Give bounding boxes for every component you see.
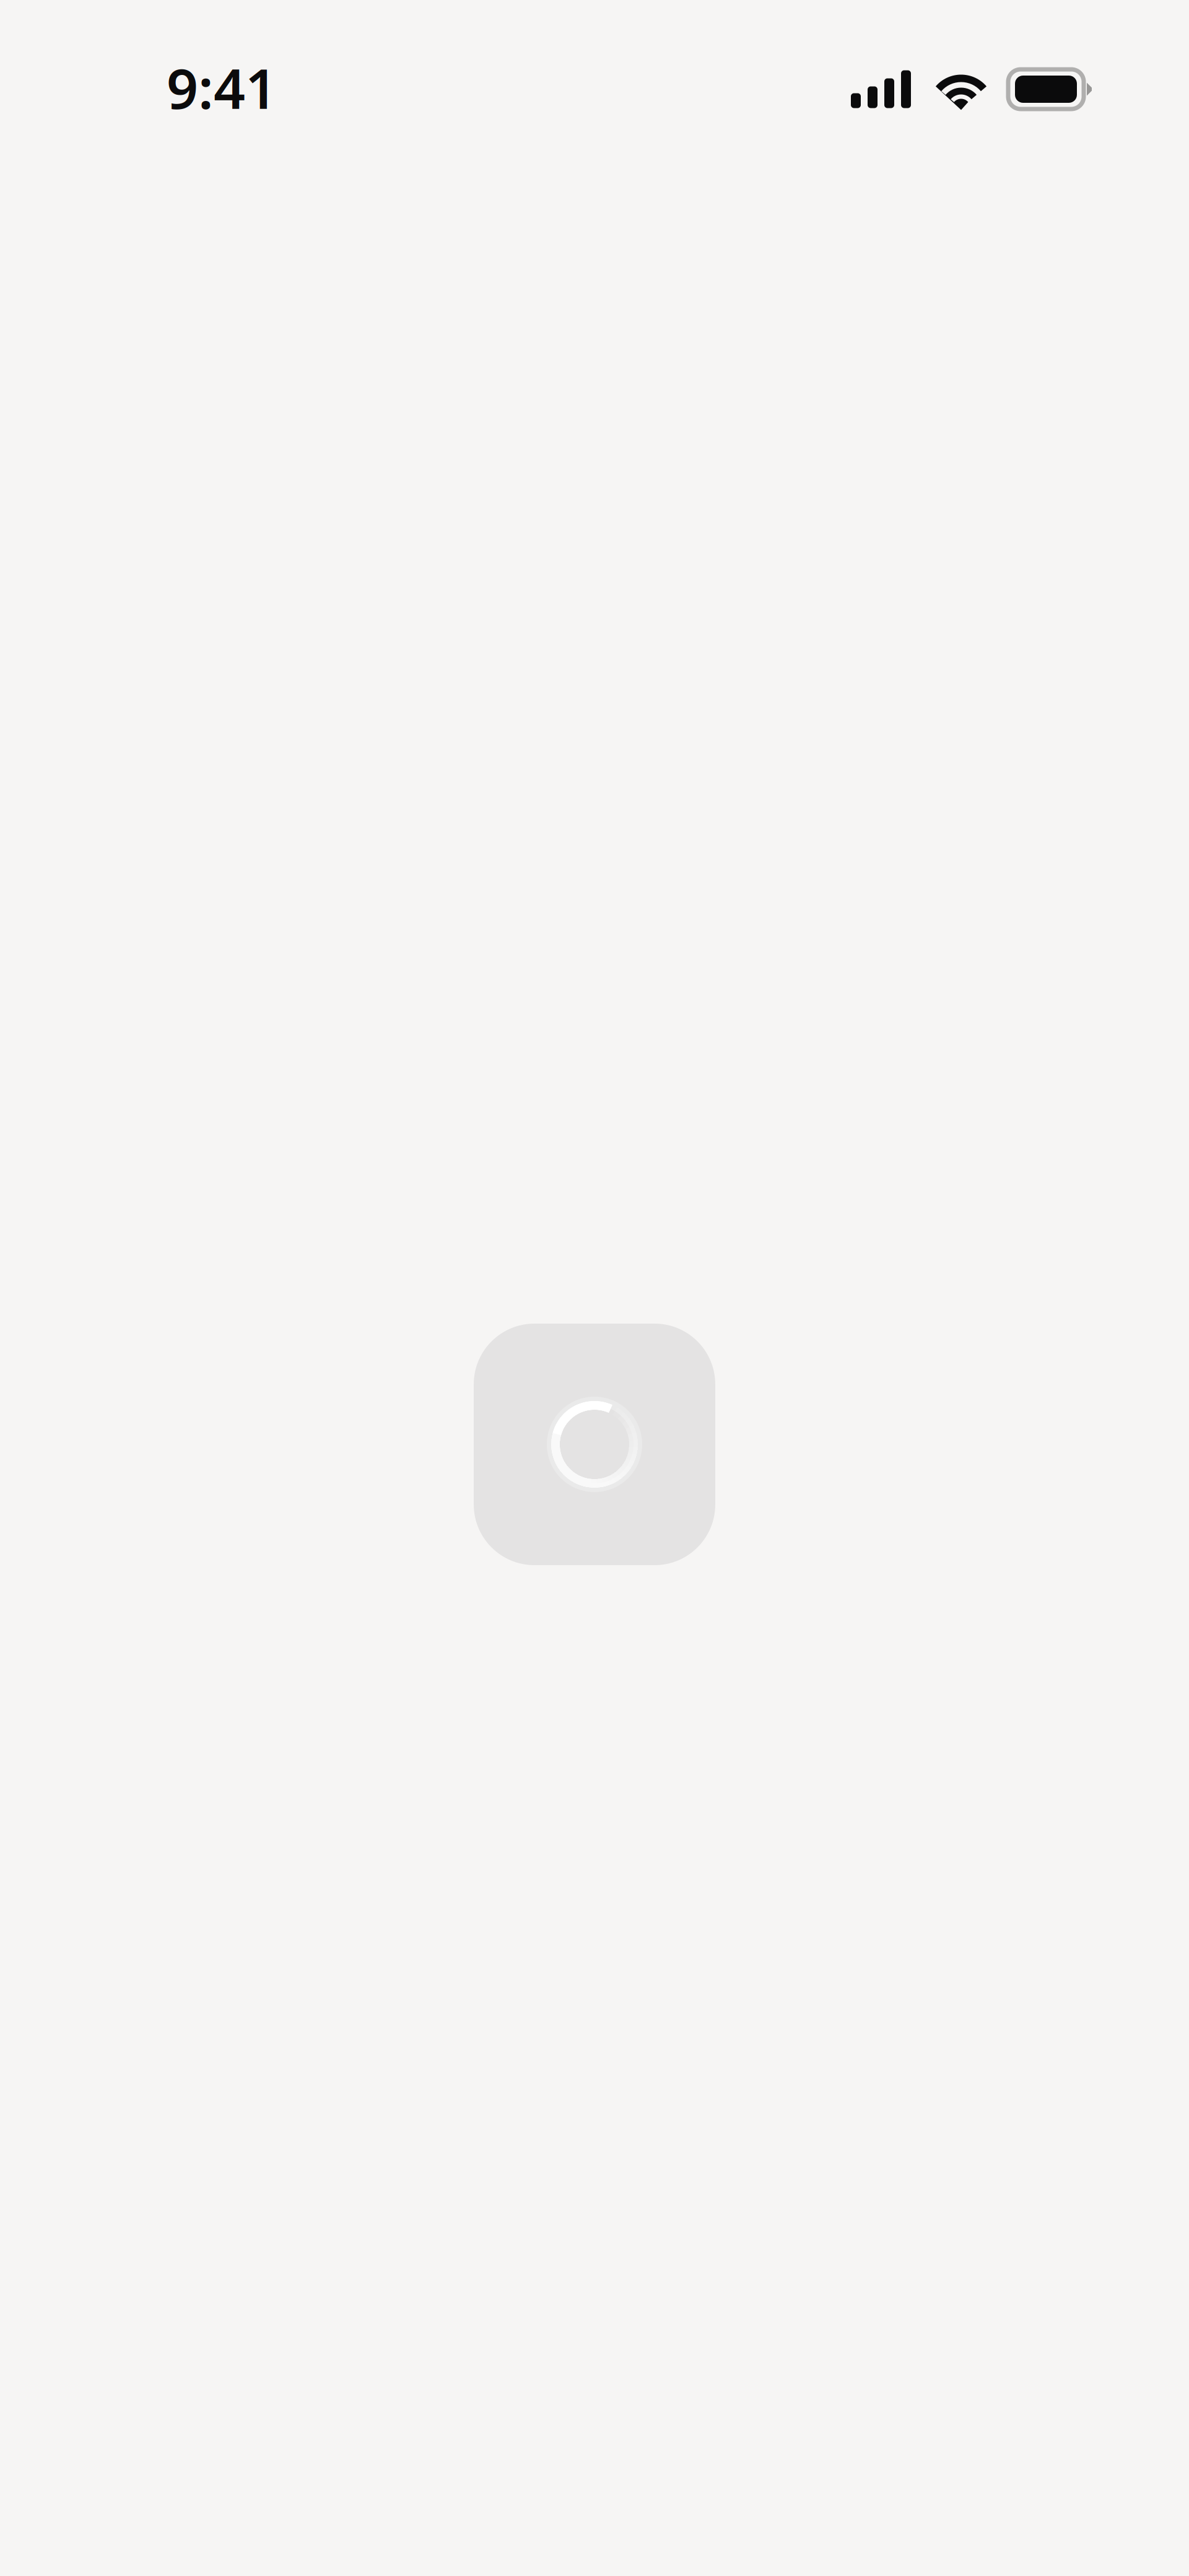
staticText: 9:41 (167, 51, 277, 124)
button[interactable]: Loading (474, 1324, 715, 1565)
